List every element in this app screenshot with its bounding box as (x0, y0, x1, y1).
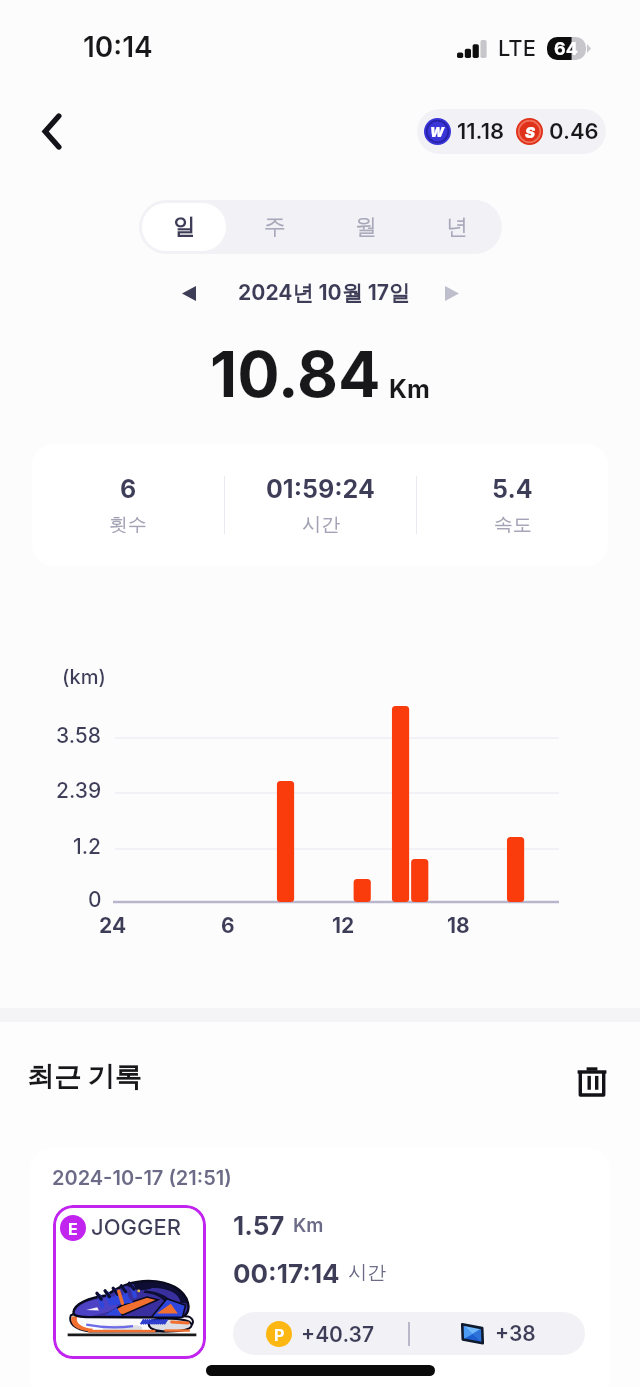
staticText: LTE (498, 35, 536, 62)
staticText: 3.58 (56, 723, 102, 748)
button[interactable]: Next day (430, 271, 474, 315)
button[interactable]: 년 (414, 203, 499, 251)
staticText: 12 (332, 913, 355, 938)
staticText: +40.37 (301, 1322, 375, 1347)
button[interactable]: Previous day (167, 271, 211, 315)
staticText: 주 (264, 213, 286, 241)
staticText: 10:14 (83, 30, 153, 64)
staticText: 0.46 (549, 118, 599, 145)
staticText: JOGGER (91, 1214, 181, 1241)
staticText: 24 (99, 913, 127, 938)
staticText: E (68, 1219, 78, 1238)
button[interactable]: Back (26, 105, 78, 157)
staticText: 2024년 10월 17일 (238, 280, 410, 307)
staticText: (km) (62, 665, 106, 689)
staticText: 2.39 (56, 778, 102, 803)
staticText: 10.84 (210, 336, 381, 412)
staticText: 00:17:14 (233, 1258, 340, 1289)
staticText: 1.2 (73, 834, 102, 859)
staticText: P (274, 1325, 285, 1344)
button[interactable]: 주 (232, 203, 317, 251)
staticText: 일 (173, 213, 195, 241)
staticText: 시간 (302, 513, 340, 537)
staticText: 시간 (348, 1261, 386, 1285)
staticText: 11.18 (457, 118, 505, 145)
staticText: Km (293, 1214, 324, 1237)
button[interactable]: 2024-10-17 (21:51) (30, 1148, 610, 1387)
staticText: 년 (446, 213, 468, 241)
staticText: 18 (447, 913, 470, 938)
button[interactable]: Delete records (569, 1058, 615, 1104)
staticText: Km (389, 374, 430, 404)
staticText: 횟수 (109, 513, 147, 537)
staticText: 01:59:24 (266, 474, 375, 504)
staticText: 월 (355, 213, 377, 241)
staticText: +38 (495, 1321, 536, 1346)
staticText: 속도 (494, 513, 532, 537)
button[interactable]: 일 (142, 203, 226, 251)
staticText: 0 (88, 887, 102, 912)
button[interactable]: 월 (323, 203, 408, 251)
button[interactable]: W (417, 109, 606, 154)
staticText: 6 (120, 474, 137, 504)
staticText: 5.4 (492, 474, 533, 504)
staticText: 1.57 (233, 1210, 285, 1241)
staticText: S (525, 123, 535, 141)
staticText: W (430, 124, 445, 140)
staticText: 64 (554, 38, 578, 60)
staticText: 6 (221, 913, 235, 938)
staticText: 최근 기록 (27, 1060, 142, 1094)
staticText: 2024-10-17 (21:51) (52, 1166, 232, 1190)
